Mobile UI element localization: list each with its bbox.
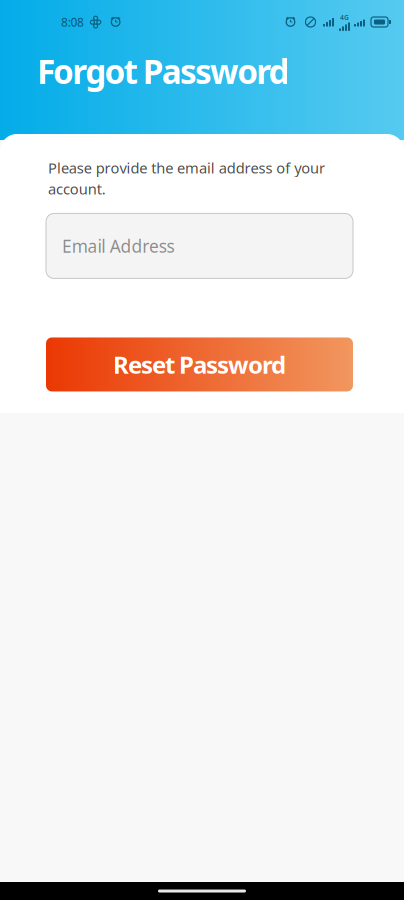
staticText: 4G [340, 13, 349, 22]
staticText: Reset Password [113, 348, 286, 380]
staticText: 8:08 [61, 14, 84, 30]
button[interactable]: Reset Password [46, 337, 353, 391]
staticText: Please provide the email address of your… [48, 158, 325, 198]
staticText: Forgot Password [37, 49, 289, 93]
staticText: Email Address [62, 234, 175, 257]
